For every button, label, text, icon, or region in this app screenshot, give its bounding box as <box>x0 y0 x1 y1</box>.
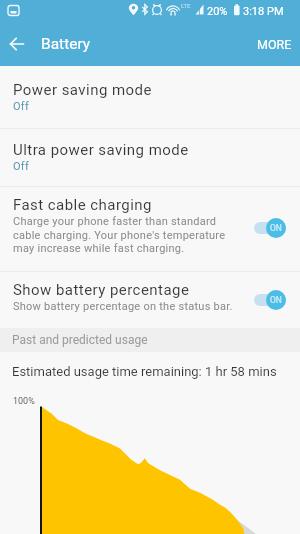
staticText: LTE <box>181 2 191 9</box>
staticText: Past and predicted usage <box>12 333 148 347</box>
staticText: Show battery percentage <box>13 281 190 299</box>
staticText: Battery <box>41 35 91 53</box>
staticText: 100% <box>13 396 35 407</box>
staticText: Off <box>13 100 29 113</box>
button[interactable]: Fast cable charging <box>0 187 300 271</box>
staticText: Off <box>13 160 29 173</box>
button[interactable]: Show battery percentage <box>0 272 300 328</box>
staticText: Power saving mode <box>13 81 152 99</box>
button[interactable]: Navigate up <box>0 27 34 61</box>
staticText: ON <box>270 295 282 305</box>
button[interactable]: Power saving mode <box>0 66 300 128</box>
staticText: MORE <box>257 37 292 52</box>
button[interactable]: MORE <box>249 29 300 60</box>
staticText: Estimated usage time remaining: 1 hr 58 … <box>12 364 277 379</box>
button[interactable]: Ultra power saving mode <box>0 129 300 186</box>
staticText: 3:18 PM <box>243 5 284 18</box>
staticText: Fast cable charging <box>13 196 152 214</box>
button[interactable]: Toggle on <box>254 290 286 310</box>
staticText: ON <box>270 223 282 233</box>
staticText: Ultra power saving mode <box>13 141 189 159</box>
staticText: Charge your phone faster than standard c… <box>13 215 226 254</box>
staticText: 20% <box>207 5 228 18</box>
button[interactable]: Toggle on <box>254 218 286 238</box>
staticText: Show battery percentage on the status ba… <box>13 300 233 313</box>
